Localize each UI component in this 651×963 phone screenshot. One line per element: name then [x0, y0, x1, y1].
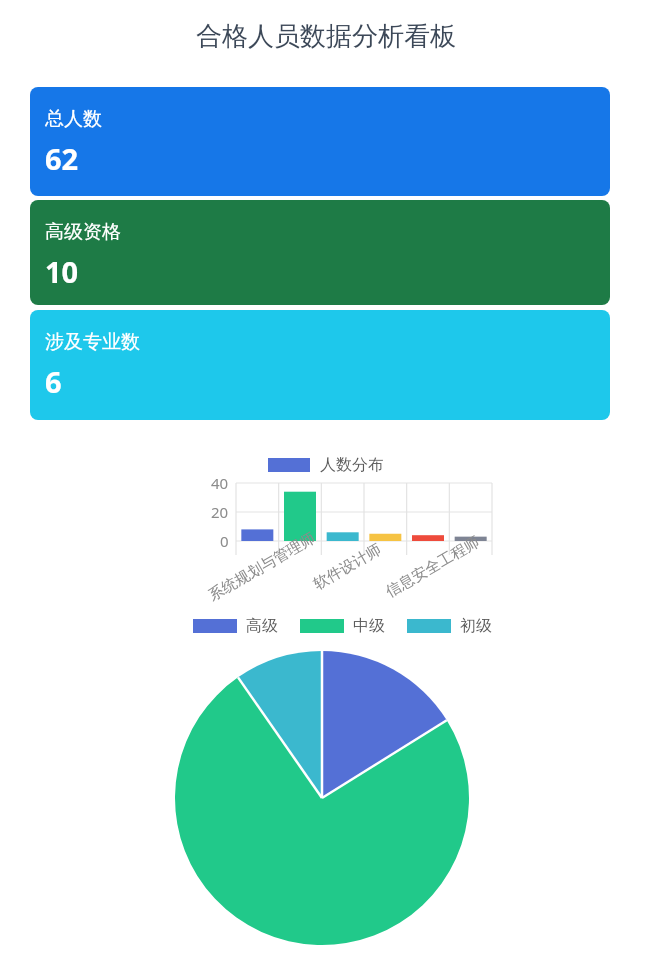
button[interactable]: 高级资格 [30, 200, 610, 305]
staticText: 合格人员数据分析看板 [196, 20, 456, 53]
staticText: 涉及专业数 [45, 330, 140, 354]
button[interactable]: 涉及专业数 [30, 310, 610, 420]
staticText: 10 [45, 252, 79, 291]
staticText: 总人数 [45, 107, 102, 131]
staticText: 62 [45, 139, 79, 178]
staticText: 高级资格 [45, 220, 121, 244]
staticText: 6 [45, 362, 62, 401]
button[interactable]: 总人数 [30, 87, 610, 196]
